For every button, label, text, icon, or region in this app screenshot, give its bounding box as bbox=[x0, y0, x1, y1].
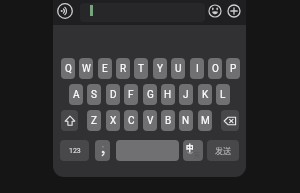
button[interactable]: O bbox=[208, 58, 222, 79]
button[interactable]: P bbox=[226, 58, 240, 79]
button[interactable]: E bbox=[98, 58, 112, 79]
button[interactable]: A bbox=[69, 84, 83, 105]
staticText: Z bbox=[91, 115, 97, 127]
button[interactable] bbox=[207, 3, 223, 19]
button[interactable] bbox=[80, 3, 205, 22]
button[interactable]: T bbox=[134, 58, 148, 79]
staticText: W bbox=[82, 63, 91, 75]
button[interactable]: F bbox=[124, 84, 138, 105]
button[interactable]: W bbox=[79, 58, 93, 79]
staticText: K bbox=[202, 89, 209, 101]
button[interactable]: J bbox=[179, 84, 193, 105]
button[interactable]: Z bbox=[87, 110, 101, 131]
staticText: E bbox=[102, 63, 108, 75]
staticText: B bbox=[165, 115, 172, 127]
button[interactable]: G bbox=[143, 84, 157, 105]
staticText: S bbox=[91, 89, 97, 101]
button[interactable]: S bbox=[87, 84, 101, 105]
staticText: A bbox=[73, 89, 80, 101]
button[interactable]: 123 bbox=[60, 140, 89, 161]
staticText: I bbox=[196, 63, 199, 75]
button[interactable]: I bbox=[190, 58, 204, 79]
staticText: J bbox=[183, 89, 189, 101]
button[interactable]: L bbox=[216, 84, 230, 105]
staticText: F bbox=[128, 89, 134, 101]
staticText: V bbox=[147, 115, 154, 127]
staticText: 发送 bbox=[215, 145, 231, 157]
staticText: X bbox=[110, 115, 117, 127]
button[interactable]: M bbox=[198, 110, 212, 131]
button[interactable]: Q bbox=[61, 58, 75, 79]
staticText: C bbox=[128, 115, 135, 127]
button[interactable] bbox=[95, 140, 110, 161]
staticText: G bbox=[147, 89, 154, 101]
button[interactable]: K bbox=[198, 84, 212, 105]
button[interactable]: C bbox=[124, 110, 138, 131]
staticText: U bbox=[175, 63, 182, 75]
button[interactable]: R bbox=[116, 58, 130, 79]
staticText: 中 bbox=[186, 142, 194, 153]
staticText: D bbox=[110, 89, 117, 101]
staticText: 123 bbox=[69, 147, 81, 155]
button[interactable]: 中 bbox=[183, 140, 203, 161]
staticText: N bbox=[182, 115, 190, 127]
button[interactable]: H bbox=[161, 84, 175, 105]
button[interactable]: 发送 bbox=[207, 140, 239, 161]
staticText: Y bbox=[157, 63, 164, 75]
staticText: H bbox=[164, 89, 172, 101]
staticText: M bbox=[201, 115, 210, 127]
button[interactable]: Y bbox=[153, 58, 167, 79]
button[interactable] bbox=[56, 2, 74, 20]
staticText: T bbox=[138, 63, 144, 75]
staticText: R bbox=[120, 63, 127, 75]
staticText: 英 bbox=[194, 150, 201, 159]
staticText: O bbox=[212, 63, 219, 75]
button[interactable]: U bbox=[171, 58, 185, 79]
button[interactable]: N bbox=[179, 110, 193, 131]
button[interactable] bbox=[61, 110, 78, 131]
staticText: L bbox=[220, 89, 226, 101]
button[interactable] bbox=[226, 3, 242, 19]
button[interactable]: D bbox=[106, 84, 120, 105]
button[interactable]: V bbox=[143, 110, 157, 131]
button[interactable] bbox=[116, 140, 179, 161]
button[interactable] bbox=[221, 110, 239, 131]
staticText: Q bbox=[65, 63, 72, 75]
button[interactable]: X bbox=[106, 110, 120, 131]
button[interactable]: B bbox=[161, 110, 175, 131]
staticText: P bbox=[230, 63, 237, 75]
